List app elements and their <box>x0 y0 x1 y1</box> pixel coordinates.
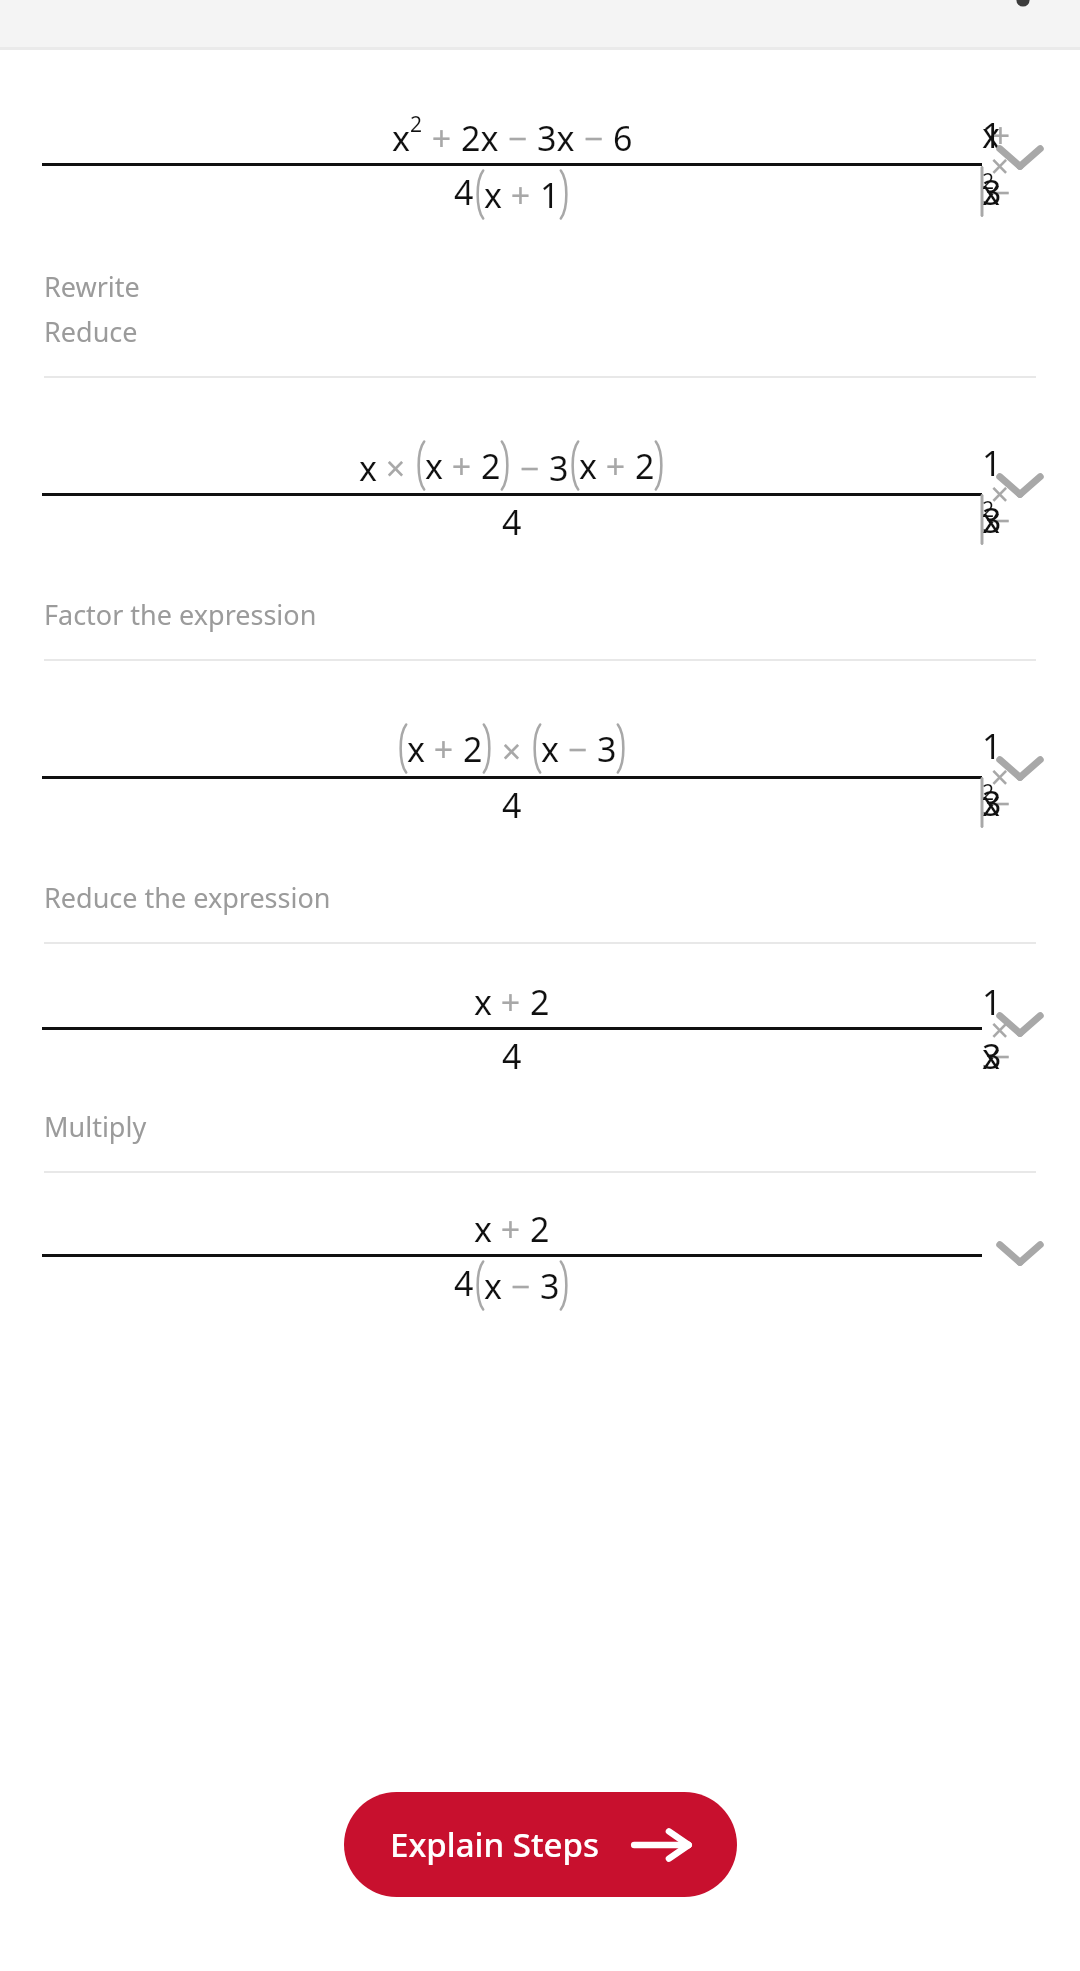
staticText: 4 <box>454 1260 474 1306</box>
staticText: 2 <box>410 109 423 138</box>
staticText: x <box>541 726 559 772</box>
staticText: 2x <box>461 115 499 161</box>
staticText: 6 <box>613 115 633 161</box>
staticText: 3 <box>540 1263 560 1309</box>
staticText: + <box>425 726 463 772</box>
staticText: x <box>484 172 502 218</box>
button[interactable]: x <box>0 1173 1080 1355</box>
staticText: 2 <box>635 443 655 489</box>
staticText: x <box>425 443 443 489</box>
button[interactable]: Expand step <box>982 119 1058 195</box>
button[interactable]: More options <box>1012 0 1034 22</box>
staticText: 3 <box>549 445 569 491</box>
staticText: − <box>502 1263 540 1309</box>
button[interactable]: Explain Steps <box>344 1792 737 1897</box>
staticText: + <box>492 979 530 1025</box>
staticText: 4 <box>502 782 522 828</box>
staticText: 4 <box>502 1033 522 1079</box>
staticText: − <box>575 115 613 161</box>
staticText: x <box>392 115 410 161</box>
staticText: + <box>443 443 481 489</box>
staticText: + <box>597 443 635 489</box>
staticText: − <box>511 445 549 491</box>
staticText: Multiply <box>44 1108 147 1145</box>
button[interactable]: x <box>0 50 1080 378</box>
staticText: x <box>474 979 492 1025</box>
staticText: × <box>493 728 531 774</box>
staticText: 3 <box>597 726 617 772</box>
button[interactable]: Expand step <box>982 730 1058 806</box>
staticText: Rewrite <box>44 268 140 305</box>
button[interactable]: Expand step <box>982 447 1058 523</box>
staticText: 2 <box>530 1206 550 1252</box>
staticText: − <box>499 115 537 161</box>
staticText: Reduce the expression <box>44 879 331 916</box>
staticText: 2 <box>481 443 501 489</box>
staticText: 2 <box>530 979 550 1025</box>
staticText: Reduce <box>44 313 138 350</box>
staticText: x <box>579 443 597 489</box>
staticText: + <box>502 172 540 218</box>
staticText: × <box>377 445 415 491</box>
staticText: − <box>559 726 597 772</box>
button[interactable]: x <box>0 661 1080 944</box>
staticText: Explain Steps <box>390 1822 599 1867</box>
staticText: 1 <box>540 172 560 218</box>
staticText: x <box>484 1263 502 1309</box>
button[interactable]: Expand step <box>982 986 1058 1062</box>
staticText: + <box>492 1206 530 1252</box>
staticText: 3x <box>537 115 575 161</box>
staticText: x <box>359 445 377 491</box>
button[interactable]: x <box>0 378 1080 661</box>
staticText: + <box>423 115 461 161</box>
button[interactable]: Expand step <box>982 1215 1058 1291</box>
staticText: 2 <box>463 726 483 772</box>
staticText: 4 <box>454 169 474 215</box>
staticText: x <box>407 726 425 772</box>
staticText: 4 <box>502 499 522 545</box>
staticText: x <box>474 1206 492 1252</box>
button[interactable]: x <box>0 944 1080 1173</box>
staticText: Factor the expression <box>44 596 317 633</box>
